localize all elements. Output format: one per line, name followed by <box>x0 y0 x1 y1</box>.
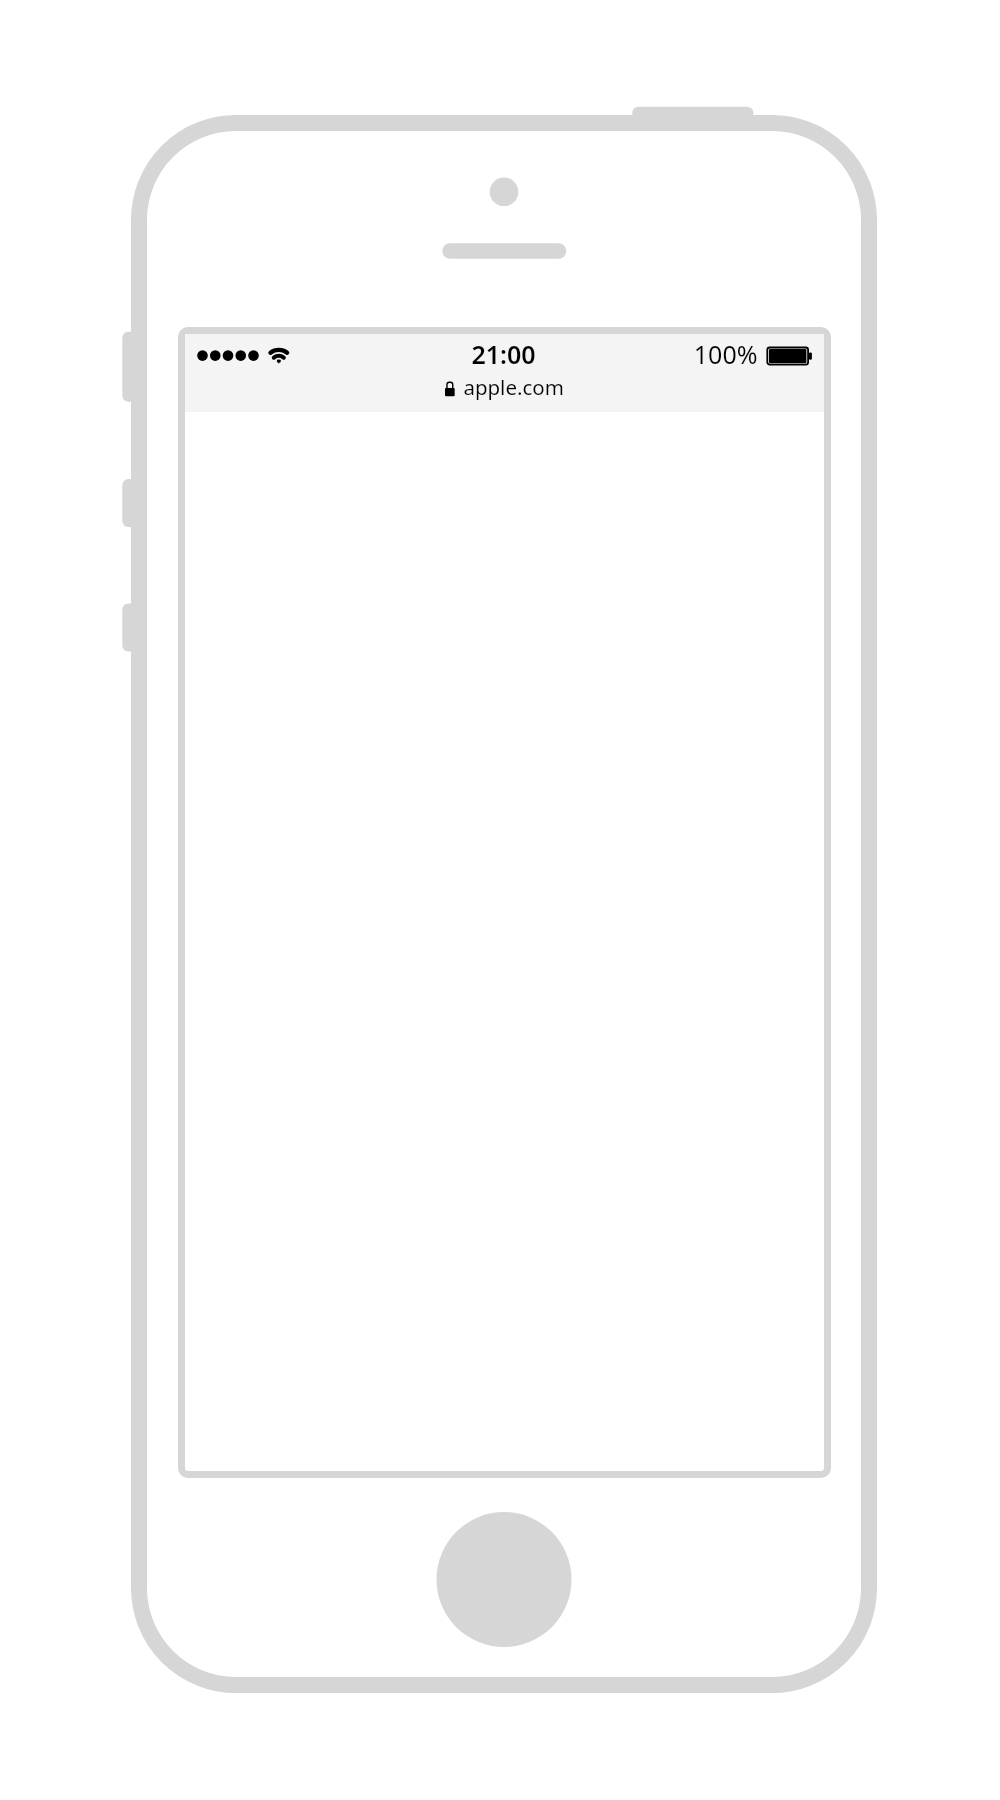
button[interactable]: Volume up <box>122 479 144 527</box>
button[interactable]: Power button <box>632 106 754 132</box>
button[interactable]: Home button <box>437 1512 572 1647</box>
button[interactable]: Address bar, apple.com <box>185 372 824 412</box>
button[interactable]: Ring silent switch <box>122 331 144 401</box>
button[interactable]: Volume down <box>122 604 144 652</box>
button[interactable]: Status bar, 21:00, Wi-Fi, battery 100 pe… <box>185 334 824 372</box>
